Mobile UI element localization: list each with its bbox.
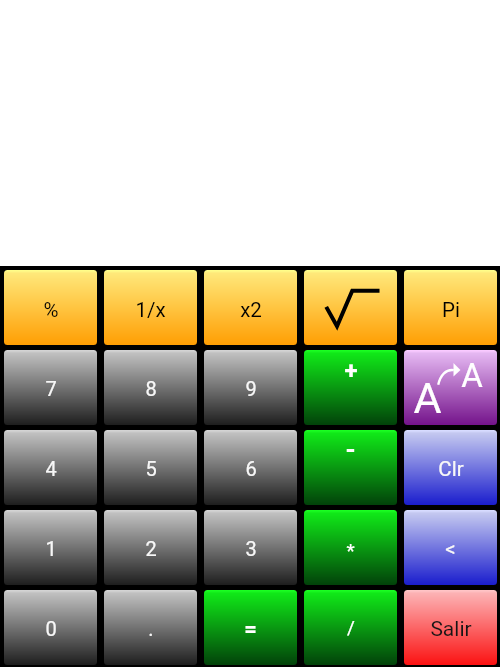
button[interactable]: . <box>104 590 197 665</box>
button[interactable]: < <box>404 510 497 585</box>
button[interactable]: - <box>304 430 397 505</box>
staticText: A <box>413 373 442 423</box>
button[interactable]: Pi <box>404 270 497 345</box>
button[interactable]: 6 <box>204 430 297 505</box>
staticText: 4 <box>45 457 57 480</box>
staticText: 0 <box>45 617 57 640</box>
button[interactable]: 8 <box>104 350 197 425</box>
staticText: 6 <box>245 457 257 480</box>
button[interactable]: x2 <box>204 270 297 345</box>
button[interactable]: Change font size <box>404 350 497 425</box>
staticText: . <box>148 617 154 640</box>
button[interactable]: 1 <box>4 510 97 585</box>
button[interactable]: 1/x <box>104 270 197 345</box>
staticText: 9 <box>245 377 257 400</box>
staticText: 3 <box>245 537 257 560</box>
staticText: * <box>346 539 355 561</box>
staticText: 1 <box>45 537 57 560</box>
staticText: 2 <box>145 537 157 560</box>
button[interactable]: Salir <box>404 590 497 665</box>
staticText: x2 <box>240 298 262 322</box>
staticText: + <box>344 357 358 385</box>
staticText: Clr <box>438 457 464 481</box>
button[interactable]: 5 <box>104 430 197 505</box>
staticText: 5 <box>145 457 157 480</box>
staticText: / <box>347 616 355 638</box>
button[interactable]: Clr <box>404 430 497 505</box>
staticText: Pi <box>442 298 460 322</box>
staticText: = <box>244 616 257 642</box>
button[interactable]: 0 <box>4 590 97 665</box>
button[interactable]: Square root <box>304 270 397 345</box>
staticText: A <box>461 356 483 395</box>
button[interactable]: / <box>304 590 397 665</box>
staticText: Salir <box>430 617 472 642</box>
button[interactable]: = <box>204 590 297 665</box>
button[interactable]: * <box>304 510 397 585</box>
staticText: - <box>345 434 356 464</box>
button[interactable]: % <box>4 270 97 345</box>
button[interactable]: 2 <box>104 510 197 585</box>
button[interactable]: 3 <box>204 510 297 585</box>
button[interactable]: 4 <box>4 430 97 505</box>
button[interactable]: 9 <box>204 350 297 425</box>
staticText: % <box>43 298 59 322</box>
staticText: 1/x <box>135 298 166 322</box>
staticText: 8 <box>145 377 157 400</box>
button[interactable]: 7 <box>4 350 97 425</box>
staticText: 7 <box>45 377 57 400</box>
staticText: < <box>445 537 456 561</box>
button[interactable]: + <box>304 350 397 425</box>
